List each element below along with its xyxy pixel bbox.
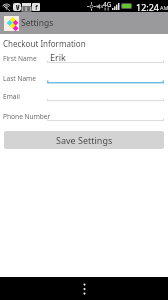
button[interactable]: Email (0, 86, 168, 102)
staticText: Settings (21, 17, 54, 29)
staticText: 12:24 (136, 1, 160, 13)
button[interactable]: More options (74, 279, 94, 299)
staticText: First Name (3, 54, 37, 63)
staticText: Erik (50, 51, 66, 63)
staticText: Email (3, 92, 20, 101)
staticText: Phone Number (3, 112, 51, 121)
button[interactable]: First Name (0, 48, 168, 64)
staticText: Save Settings (56, 134, 113, 146)
staticText: Checkout Information (3, 38, 86, 49)
staticText: AM (160, 4, 168, 11)
staticText: f (35, 3, 38, 11)
button[interactable]: Save Settings (4, 131, 164, 149)
staticText: Last Name (3, 74, 37, 83)
button[interactable]: Last Name (0, 68, 168, 84)
staticText: 4G (103, 0, 112, 9)
button[interactable]: Phone Number (0, 106, 168, 122)
